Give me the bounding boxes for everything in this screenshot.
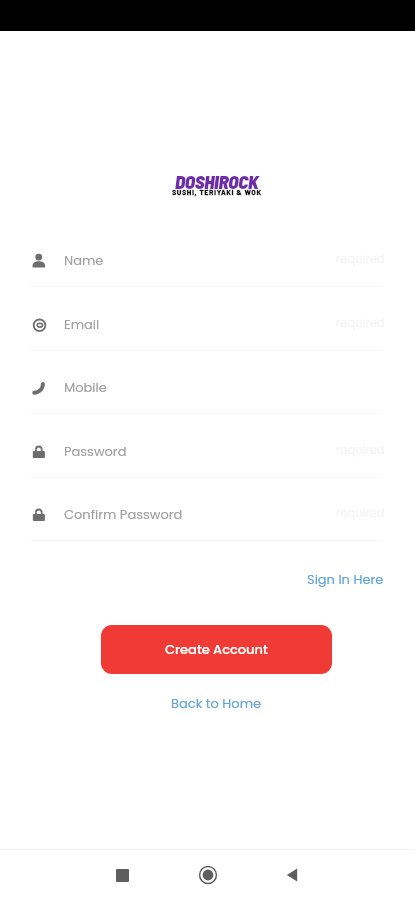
staticText: Email: [64, 315, 100, 333]
staticText: Password: [64, 442, 127, 460]
button[interactable]: Create Account: [101, 625, 332, 674]
other: Email: [29, 315, 49, 335]
button[interactable]: Password: [0, 436, 415, 468]
staticText: Create Account: [165, 640, 268, 658]
button[interactable]: Recent apps: [106, 859, 138, 891]
staticText: Back to Home: [171, 694, 262, 712]
staticText: SUSHI, TERIYAKI & WOK: [172, 187, 262, 197]
button[interactable]: Back to Home: [161, 686, 272, 720]
button[interactable]: Mobile: [0, 372, 415, 404]
button[interactable]: Confirm Password: [0, 499, 415, 531]
staticText: required: [336, 315, 385, 331]
button[interactable]: Back: [276, 859, 308, 891]
other: Password: [29, 442, 49, 462]
other: Confirm Password: [29, 505, 49, 525]
button[interactable]: Sign In Here: [299, 562, 392, 596]
staticText: required: [336, 442, 385, 458]
button[interactable]: Home: [192, 859, 224, 891]
staticText: DOSHIROCK: [175, 170, 259, 193]
staticText: Confirm Password: [64, 505, 183, 523]
button[interactable]: Name: [0, 245, 415, 277]
staticText: Sign In Here: [307, 570, 384, 588]
staticText: required: [336, 505, 385, 521]
staticText: Mobile: [64, 378, 107, 396]
staticText: required: [336, 251, 385, 267]
staticText: Name: [64, 251, 104, 269]
other: Mobile: [29, 378, 49, 398]
other: Name: [29, 251, 49, 271]
button[interactable]: Email: [0, 309, 415, 341]
